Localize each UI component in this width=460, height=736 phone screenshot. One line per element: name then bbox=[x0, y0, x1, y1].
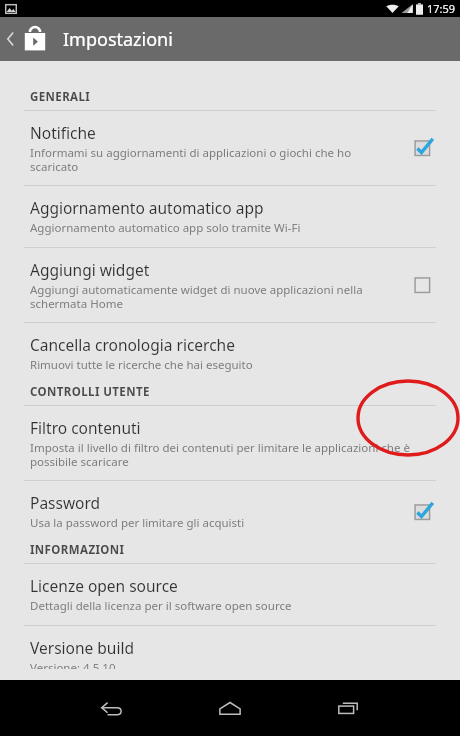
staticText: Dettagli della licenza per il software o… bbox=[30, 598, 292, 614]
staticText: GENERALI bbox=[30, 89, 91, 105]
staticText: Versione: 4.5.10 bbox=[30, 660, 116, 669]
staticText: Aggiungi automaticamente widget di nuove… bbox=[30, 282, 394, 311]
button[interactable]: Back bbox=[0, 24, 52, 54]
button[interactable]: Notifiche bbox=[0, 111, 460, 185]
staticText: Password bbox=[30, 492, 101, 513]
button[interactable]: Home bbox=[206, 684, 254, 732]
staticText: Versione build bbox=[30, 637, 134, 658]
staticText: Licenze open source bbox=[30, 575, 178, 596]
staticText: Aggiornamento automatico app solo tramit… bbox=[30, 220, 301, 236]
button[interactable]: Cancella cronologia ricerche bbox=[0, 323, 460, 384]
staticText: 17:59 bbox=[427, 1, 456, 16]
staticText: Notifiche bbox=[30, 122, 96, 143]
button[interactable]: Licenze open source bbox=[0, 564, 460, 625]
button[interactable]: Password bbox=[0, 481, 460, 542]
staticText: Imposta il livello di filtro dei contenu… bbox=[30, 440, 424, 469]
button[interactable]: Checked bbox=[408, 497, 438, 527]
staticText: Informami su aggiornamenti di applicazio… bbox=[30, 145, 394, 174]
staticText: Cancella cronologia ricerche bbox=[30, 334, 235, 355]
staticText: INFORMAZIONI bbox=[30, 542, 125, 558]
staticText: Filtro contenuti bbox=[30, 417, 141, 438]
button[interactable]: Aggiungi widget bbox=[0, 248, 460, 322]
staticText: CONTROLLI UTENTE bbox=[30, 384, 150, 400]
button[interactable]: Back bbox=[88, 684, 136, 732]
staticText: Aggiungi widget bbox=[30, 259, 150, 280]
button[interactable]: Versione build bbox=[0, 626, 460, 680]
staticText: Aggiornamento automatico app bbox=[30, 197, 264, 218]
button[interactable]: Filtro contenuti bbox=[0, 406, 460, 480]
button[interactable]: Recent apps bbox=[324, 684, 372, 732]
staticText: Impostazioni bbox=[63, 27, 173, 52]
button[interactable]: Unchecked bbox=[408, 270, 438, 300]
staticText: Rimuovi tutte le ricerche che hai esegui… bbox=[30, 357, 253, 373]
button[interactable]: Aggiornamento automatico app bbox=[0, 186, 460, 247]
staticText: Usa la password per limitare gli acquist… bbox=[30, 515, 245, 531]
button[interactable]: Checked bbox=[408, 133, 438, 163]
